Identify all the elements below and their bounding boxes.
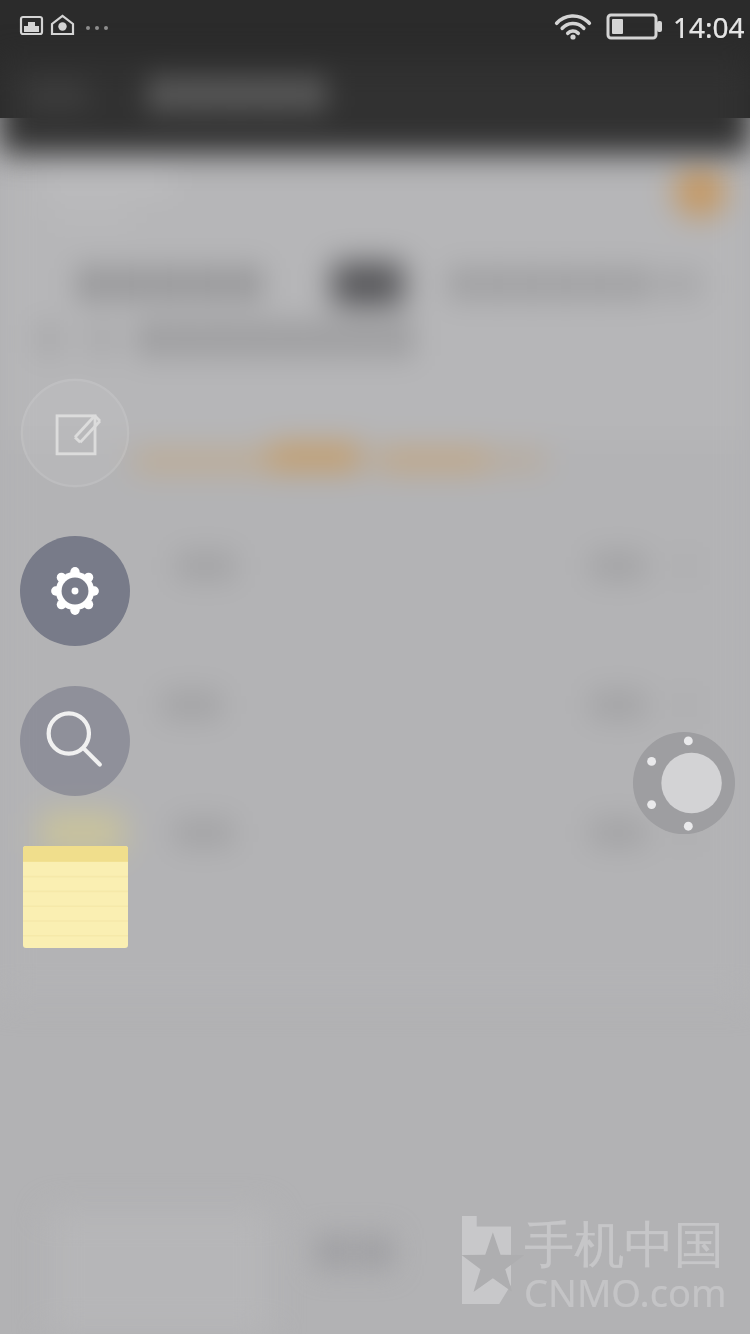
staticText: 14:04: [673, 8, 745, 46]
button[interactable]: Quick ball: [630, 729, 738, 837]
button[interactable]: New note: [23, 846, 128, 948]
button[interactable]: Settings: [20, 536, 130, 646]
staticText: CNMO.com: [524, 1266, 727, 1318]
staticText: 手机中国: [524, 1214, 724, 1277]
button[interactable]: Compose note: [20, 378, 130, 488]
button[interactable]: Search: [20, 686, 130, 796]
